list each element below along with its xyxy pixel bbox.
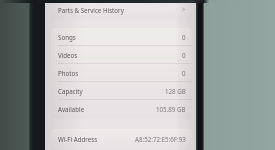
- staticText: Videos: [58, 51, 78, 59]
- button[interactable]: Capacity: [51, 82, 192, 100]
- button[interactable]: Photos: [51, 64, 192, 82]
- button[interactable]: Wi-Fi Address: [51, 129, 192, 149]
- button[interactable]: Songs: [51, 28, 192, 46]
- other: Open Parts & Service History: [181, 7, 186, 12]
- button[interactable]: Available: [51, 100, 192, 118]
- staticText: A8:52:72:E5:6F:93: [135, 135, 186, 143]
- staticText: Songs: [58, 33, 76, 41]
- staticText: Photos: [58, 69, 79, 77]
- staticText: 0: [182, 51, 186, 59]
- staticText: 0: [182, 69, 186, 77]
- staticText: Available: [58, 105, 85, 113]
- staticText: Capacity: [58, 87, 83, 95]
- button[interactable]: Videos: [51, 46, 192, 64]
- staticText: Parts & Service History: [58, 6, 124, 14]
- staticText: 128 GB: [165, 87, 186, 95]
- staticText: 0: [182, 33, 186, 41]
- staticText: 105.89 GB: [156, 105, 186, 113]
- button[interactable]: Parts & Service History: [51, 0, 192, 19]
- staticText: Wi-Fi Address: [58, 135, 98, 143]
